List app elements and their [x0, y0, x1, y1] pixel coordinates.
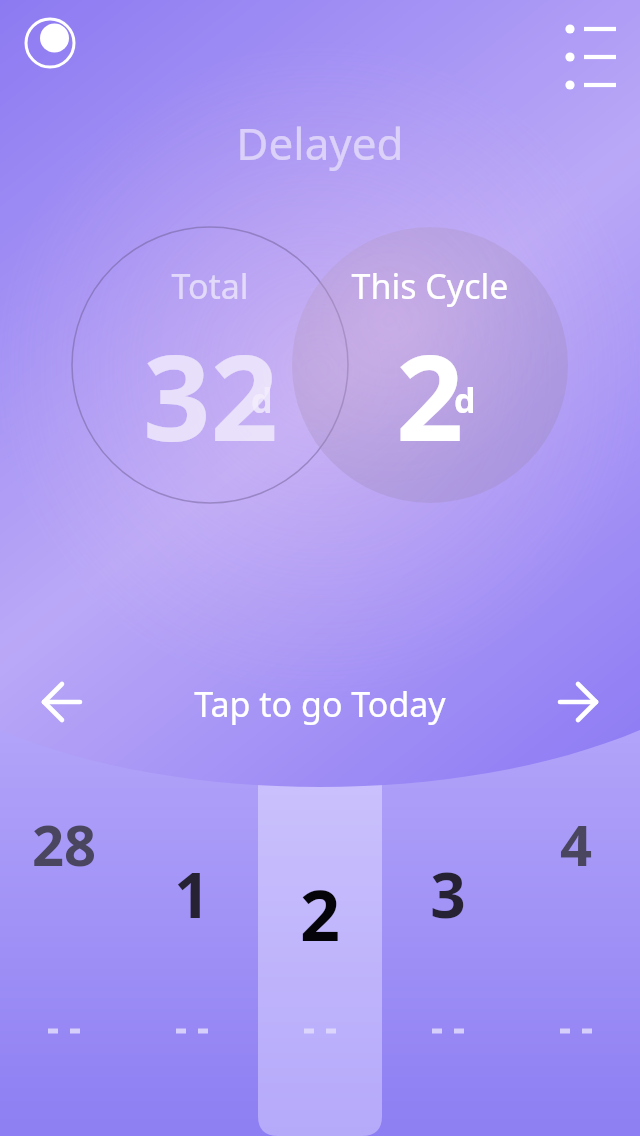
- staticText: d: [454, 377, 476, 423]
- button[interactable]: Cycle phase: [22, 15, 78, 71]
- button[interactable]: Next: [540, 672, 610, 732]
- button[interactable]: Previous: [30, 672, 100, 732]
- button[interactable]: 28: [0, 760, 128, 1136]
- staticText: 4: [512, 806, 640, 882]
- staticText: Delayed: [0, 113, 640, 173]
- staticText: 3: [384, 852, 512, 936]
- button[interactable]: 4: [512, 760, 640, 1136]
- staticText: 2: [396, 315, 464, 476]
- staticText: 28: [0, 806, 128, 882]
- button[interactable]: This Cycle: [292, 227, 568, 503]
- button[interactable]: 3: [384, 760, 512, 1136]
- staticText: 1: [128, 852, 256, 936]
- button[interactable]: Tap to go Today: [140, 672, 500, 732]
- button[interactable]: 1: [128, 760, 256, 1136]
- staticText: Tap to go Today: [140, 681, 500, 727]
- staticText: This Cycle: [292, 263, 568, 309]
- staticText: 32: [143, 315, 278, 476]
- button[interactable]: 2: [256, 760, 384, 1136]
- staticText: d: [251, 377, 273, 423]
- staticText: 2: [256, 866, 384, 961]
- staticText: Total: [72, 263, 348, 309]
- button[interactable]: Menu: [556, 12, 628, 74]
- button[interactable]: Total: [72, 227, 348, 503]
